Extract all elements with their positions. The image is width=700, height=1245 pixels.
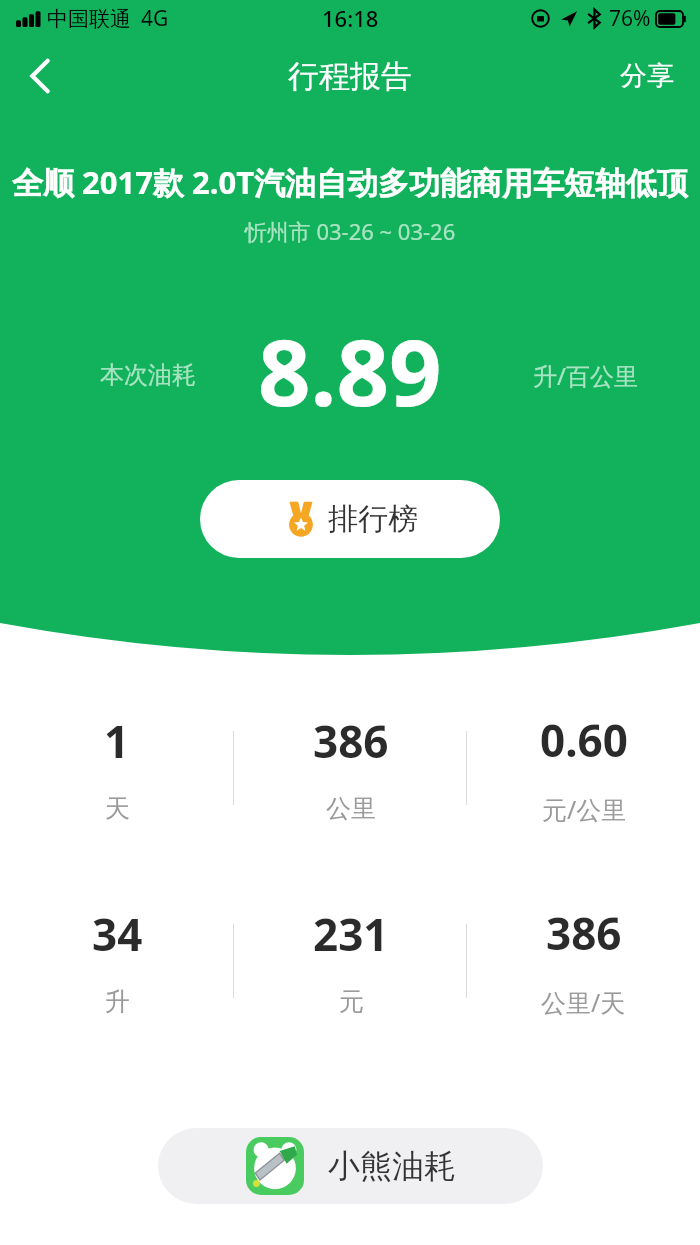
staticText: 本次油耗 — [100, 360, 196, 390]
staticText: 386 — [546, 903, 622, 963]
staticText: 8.89 — [258, 308, 442, 428]
staticText: 34 — [92, 904, 143, 964]
staticText: 元/公里 — [542, 792, 627, 826]
staticText: 忻州市 03-26 ~ 03-26 — [0, 216, 700, 246]
staticText: 排行榜 — [328, 500, 418, 538]
staticText: 全顺 2017款 2.0T汽油自动多功能商用车短轴低顶 — [12, 161, 689, 203]
staticText: 公里 — [326, 793, 376, 824]
staticText: 升 — [105, 986, 130, 1017]
button[interactable]: 分享 — [594, 43, 700, 109]
staticText: 0.60 — [540, 710, 628, 770]
staticText: 天 — [105, 793, 130, 824]
staticText: 4G — [141, 4, 169, 33]
staticText: 元 — [339, 986, 364, 1017]
staticText: 76% — [609, 4, 651, 33]
staticText: 231 — [313, 904, 389, 964]
button[interactable]: 排行榜 — [200, 480, 500, 558]
staticText: 中国联通 — [47, 6, 131, 32]
staticText: 小熊油耗 — [328, 1146, 456, 1186]
staticText: 分享 — [620, 59, 674, 93]
staticText: 升/百公里 — [533, 359, 638, 392]
staticText: 16:18 — [322, 3, 379, 33]
staticText: 1 — [104, 711, 130, 771]
staticText: 公里/天 — [541, 985, 626, 1019]
button[interactable]: 返回 — [0, 36, 80, 116]
staticText: 行程报告 — [288, 57, 412, 96]
button[interactable]: 小熊油耗 — [158, 1128, 543, 1204]
staticText: 386 — [313, 711, 389, 771]
